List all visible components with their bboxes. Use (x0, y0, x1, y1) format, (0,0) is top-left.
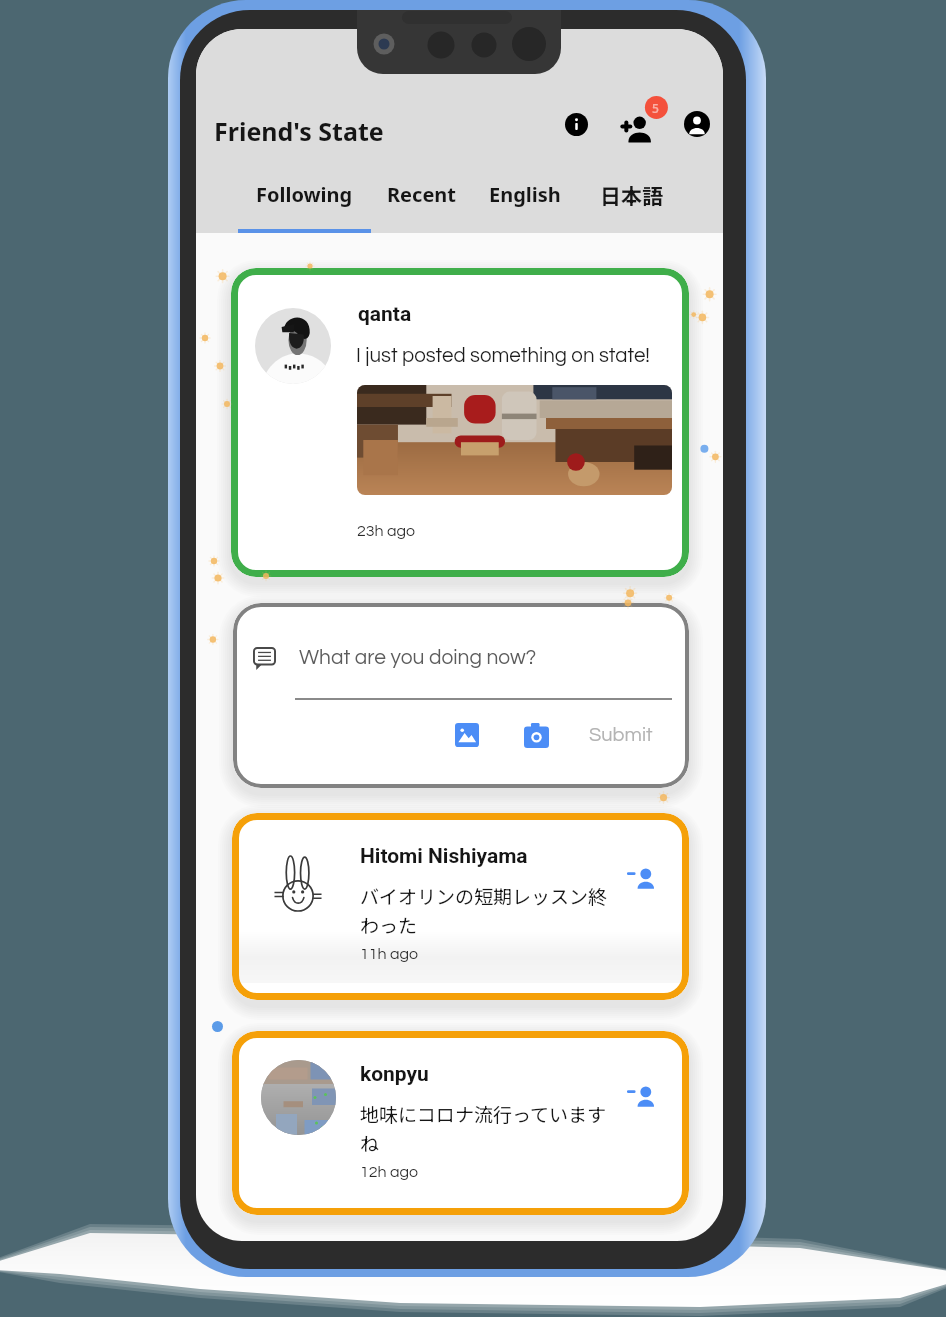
staticText: 日本語 (600, 180, 663, 210)
staticText: konpyu (360, 1062, 429, 1087)
button[interactable]: Info (557, 105, 595, 143)
staticText: 11h ago (360, 946, 419, 962)
staticText: Friend's State (214, 114, 384, 148)
staticText: 5 (652, 100, 659, 116)
staticText: Hitomi Nishiyama (360, 844, 528, 869)
button[interactable]: Unfollow (617, 855, 665, 903)
button[interactable]: qanta (231, 268, 689, 577)
staticText: ね (360, 1129, 380, 1157)
staticText: わった (360, 911, 418, 939)
button[interactable]: Add friend (613, 92, 675, 148)
button[interactable]: Recent (371, 166, 471, 233)
staticText: Following (256, 181, 353, 208)
button[interactable]: Submit (580, 713, 662, 757)
button[interactable]: Following (238, 166, 371, 233)
staticText: English (489, 181, 561, 208)
staticText: I just posted something on state! (356, 345, 650, 366)
staticText: qanta (358, 302, 412, 327)
staticText: 12h ago (360, 1164, 419, 1180)
staticText: 23h ago (357, 523, 416, 539)
staticText: What are you doing now? (299, 647, 537, 669)
staticText: バイオリンの短期レッスン終 (360, 882, 608, 910)
staticText: Submit (589, 725, 653, 746)
button[interactable]: Hitomi Nishiyama (232, 813, 689, 1000)
button[interactable]: Attach image (445, 713, 489, 757)
staticText: Recent (387, 181, 456, 208)
button[interactable]: Account (678, 105, 716, 143)
button[interactable]: 日本語 (579, 166, 684, 233)
button[interactable]: Unfollow (617, 1073, 665, 1121)
button[interactable]: konpyu (232, 1031, 689, 1215)
button[interactable]: English (471, 166, 579, 233)
staticText: 地味にコロナ流行っています (360, 1100, 607, 1128)
button[interactable]: Take photo (514, 713, 558, 757)
